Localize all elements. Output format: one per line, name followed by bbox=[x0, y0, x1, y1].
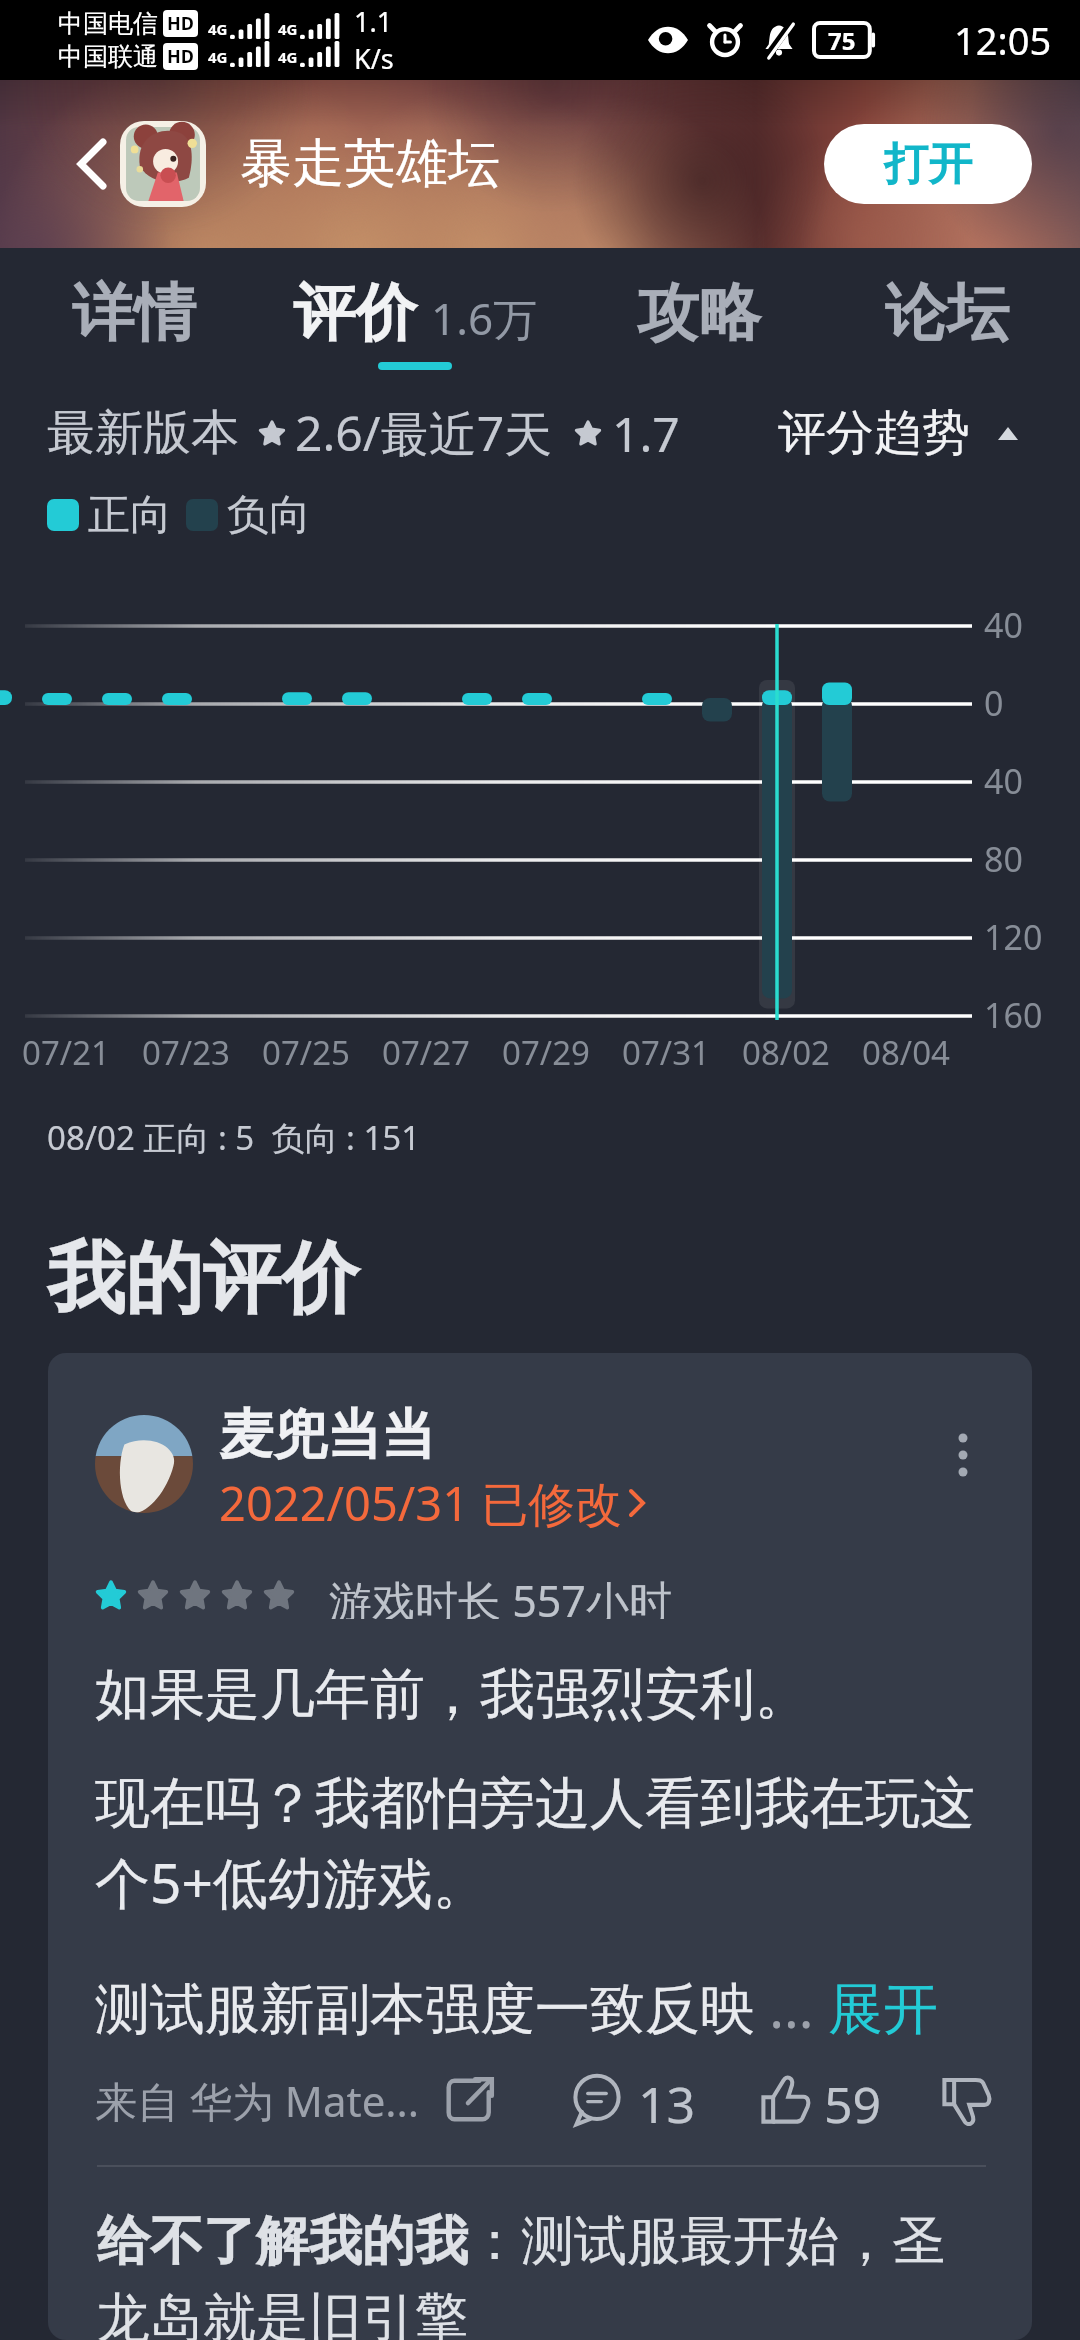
staticText: 暴走英雄坛 bbox=[240, 131, 500, 197]
staticText: 07/23 bbox=[142, 1030, 230, 1075]
staticText: 1.6万 bbox=[431, 288, 538, 348]
button[interactable]: More options bbox=[933, 1425, 993, 1485]
button[interactable]: Back bbox=[58, 130, 126, 198]
button[interactable]: 打开 bbox=[824, 124, 1032, 204]
staticText: HD bbox=[167, 11, 194, 36]
staticText: 测试服新副本强度一致反映 bbox=[95, 1975, 755, 2044]
staticText: 59 bbox=[824, 2070, 882, 2130]
button[interactable]: Dislike bbox=[938, 2072, 994, 2128]
staticText: 2.6/最近7天 bbox=[295, 400, 553, 466]
staticText: 1.7 bbox=[612, 401, 680, 466]
button[interactable]: 攻略 bbox=[637, 248, 761, 398]
staticText: 120 bbox=[984, 914, 1043, 960]
staticText: 1.1 bbox=[354, 3, 393, 40]
staticText: 4G bbox=[278, 19, 298, 39]
staticText: 07/31 bbox=[622, 1030, 710, 1075]
staticText: 详情 bbox=[72, 274, 196, 352]
staticText: 正向 bbox=[88, 489, 172, 542]
button[interactable]: 展开 bbox=[828, 1975, 938, 2044]
staticText: 评分趋势 bbox=[778, 403, 970, 463]
staticText: 08/04 bbox=[862, 1030, 950, 1075]
staticText: K/s bbox=[354, 40, 394, 77]
staticText: 攻略 bbox=[637, 274, 761, 352]
button[interactable]: 评分趋势 bbox=[778, 403, 1018, 463]
staticText: 13 bbox=[638, 2070, 696, 2130]
staticText: 4G bbox=[208, 19, 228, 39]
staticText: 负向 bbox=[227, 489, 311, 542]
staticText: 2022/05/31 已修改 bbox=[219, 1471, 623, 1535]
button[interactable]: 评价 bbox=[293, 248, 538, 398]
staticText: 我的评价 bbox=[47, 1230, 359, 1328]
button[interactable]: 59 bbox=[758, 2070, 882, 2130]
staticText: 打开 bbox=[884, 137, 972, 192]
staticText: 如果是几年前，我强烈安利。 bbox=[95, 1660, 810, 1729]
staticText: 07/29 bbox=[502, 1030, 590, 1075]
staticText: 07/21 bbox=[22, 1030, 110, 1075]
staticText: 论坛 bbox=[885, 274, 1009, 352]
button[interactable]: 2022/05/31 已修改 bbox=[219, 1471, 645, 1535]
staticText: 最新版本 bbox=[47, 403, 239, 463]
staticText: 中国电信 bbox=[58, 8, 158, 39]
button[interactable]: 详情 bbox=[72, 248, 196, 398]
staticText: 80 bbox=[984, 836, 1023, 882]
staticText: 08/02 bbox=[742, 1030, 830, 1075]
staticText: ... bbox=[755, 1969, 828, 2044]
staticText: 75 bbox=[828, 24, 856, 57]
staticText: 评价 bbox=[293, 274, 417, 352]
staticText: 给不了解我的我：测试服最开始，圣龙岛就是旧引擎 bbox=[97, 2208, 987, 2340]
staticText: 40 bbox=[984, 602, 1023, 648]
staticText: 0 bbox=[984, 680, 1004, 726]
button[interactable]: 论坛 bbox=[885, 248, 1009, 398]
staticText: 游戏时长 557小时 bbox=[329, 1571, 672, 1619]
staticText: 160 bbox=[984, 992, 1043, 1038]
button[interactable]: 13 bbox=[570, 2070, 696, 2130]
staticText: 现在吗？我都怕旁边人看到我在玩这个5+低幼游戏。 bbox=[95, 1769, 1000, 1920]
staticText: HD bbox=[167, 44, 194, 69]
staticText: 07/25 bbox=[262, 1030, 350, 1075]
staticText: 来自 华为 Mate... bbox=[95, 2072, 420, 2129]
staticText: 麦兜当当 bbox=[219, 1401, 435, 1469]
staticText: 07/27 bbox=[382, 1030, 470, 1075]
button[interactable]: Open in new window bbox=[442, 2072, 498, 2128]
staticText: 4G bbox=[208, 47, 228, 67]
staticText: 4G bbox=[278, 47, 298, 67]
staticText: 08/02 正向 : 5 负向 : 151 bbox=[47, 1115, 421, 1160]
staticText: 中国联通 bbox=[58, 41, 158, 72]
staticText: 40 bbox=[984, 758, 1023, 804]
staticText: 12:05 bbox=[954, 14, 1052, 66]
